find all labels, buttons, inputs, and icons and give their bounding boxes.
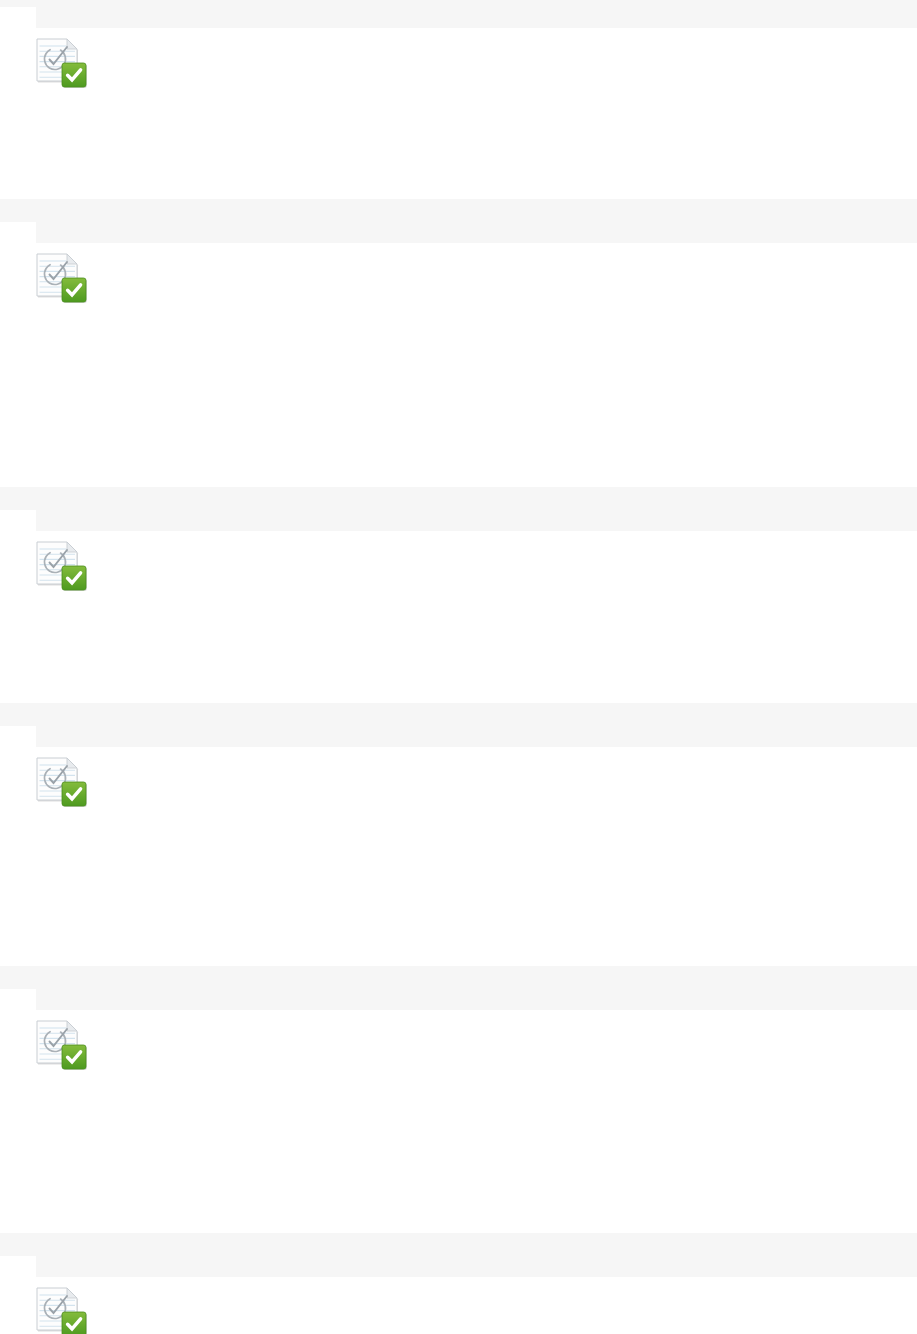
button[interactable]: Completed document 1 xyxy=(36,37,88,89)
button[interactable]: Completed document 2 xyxy=(36,252,88,304)
button[interactable]: Completed document 3 xyxy=(36,540,88,592)
button[interactable]: Completed document 4 xyxy=(36,756,88,808)
button[interactable]: Completed document 5 xyxy=(36,1019,88,1071)
button[interactable]: Completed document 6 xyxy=(36,1286,88,1334)
